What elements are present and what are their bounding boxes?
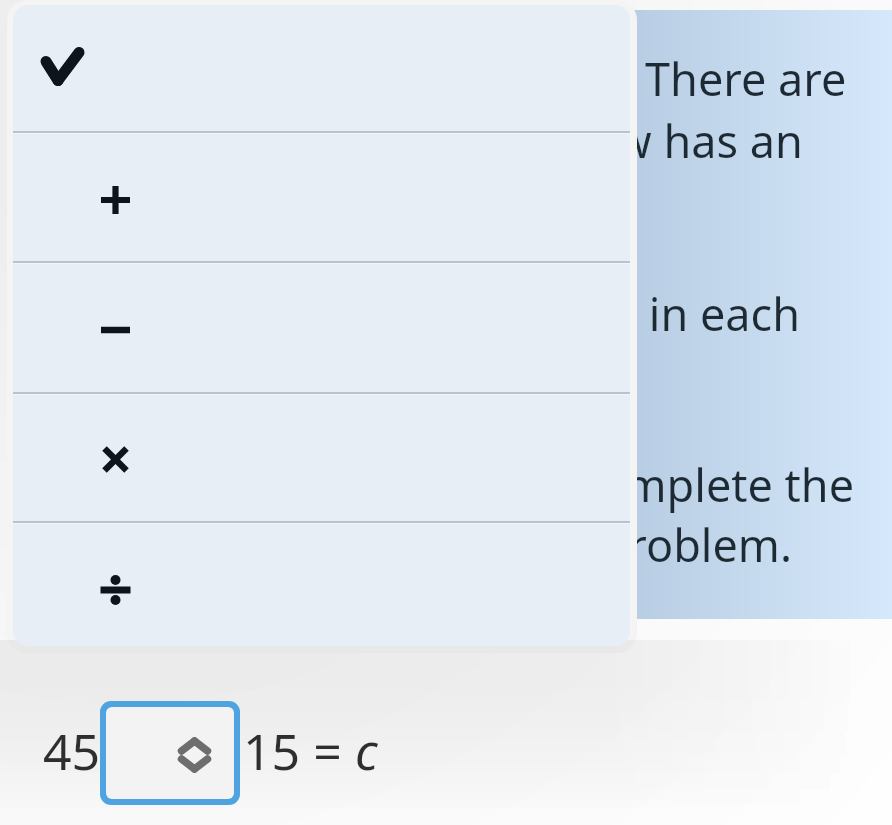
button[interactable]: Minus	[13, 262, 630, 393]
staticText: 15 =	[243, 717, 355, 785]
staticText: 45	[43, 717, 101, 785]
button[interactable]: Selected	[13, 5, 630, 132]
button[interactable]: Select operator	[106, 707, 234, 799]
staticText: 45 students and each row has an	[109, 110, 803, 171]
staticText: equation for this problem.	[238, 514, 792, 575]
staticText: Select the symbol to complete the	[138, 454, 855, 515]
staticText: c	[355, 717, 378, 785]
staticText: Mr. Lee is getting ready. There are	[133, 48, 847, 109]
button[interactable]: Multiply	[13, 393, 630, 522]
button[interactable]: Divide	[13, 522, 630, 646]
staticText: equal number of students in each	[88, 283, 800, 344]
button[interactable]: Plus	[13, 132, 630, 262]
